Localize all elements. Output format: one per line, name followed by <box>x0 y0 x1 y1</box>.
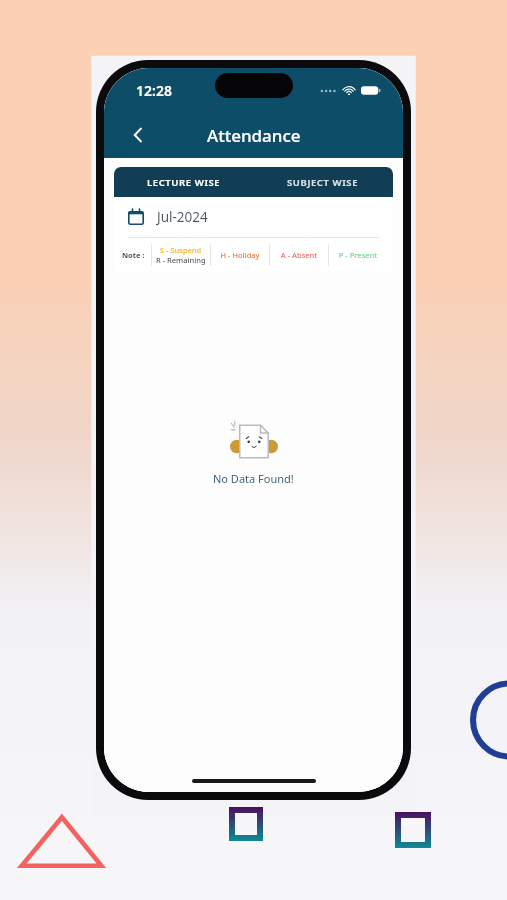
button[interactable]: Back <box>118 115 158 155</box>
staticText: H - Holiday <box>211 250 269 260</box>
staticText: Jul-2024 <box>157 208 208 226</box>
staticText: SUBJECT WISE <box>287 176 359 189</box>
staticText: R - Remaining <box>156 255 206 265</box>
staticText: LECTURE WISE <box>147 176 221 189</box>
button[interactable]: LECTURE WISE <box>114 176 253 189</box>
button[interactable]: Jul-2024 <box>114 197 393 237</box>
button[interactable]: SUBJECT WISE <box>253 176 393 189</box>
staticText: 12:28 <box>136 81 172 100</box>
staticText: Note : <box>122 250 145 260</box>
staticText: Attendance <box>207 124 301 147</box>
staticText: A - Absent <box>270 250 328 260</box>
staticText: P - Present <box>329 250 387 260</box>
staticText: S - Suspend <box>160 245 202 255</box>
staticText: No Data Found! <box>213 471 294 486</box>
